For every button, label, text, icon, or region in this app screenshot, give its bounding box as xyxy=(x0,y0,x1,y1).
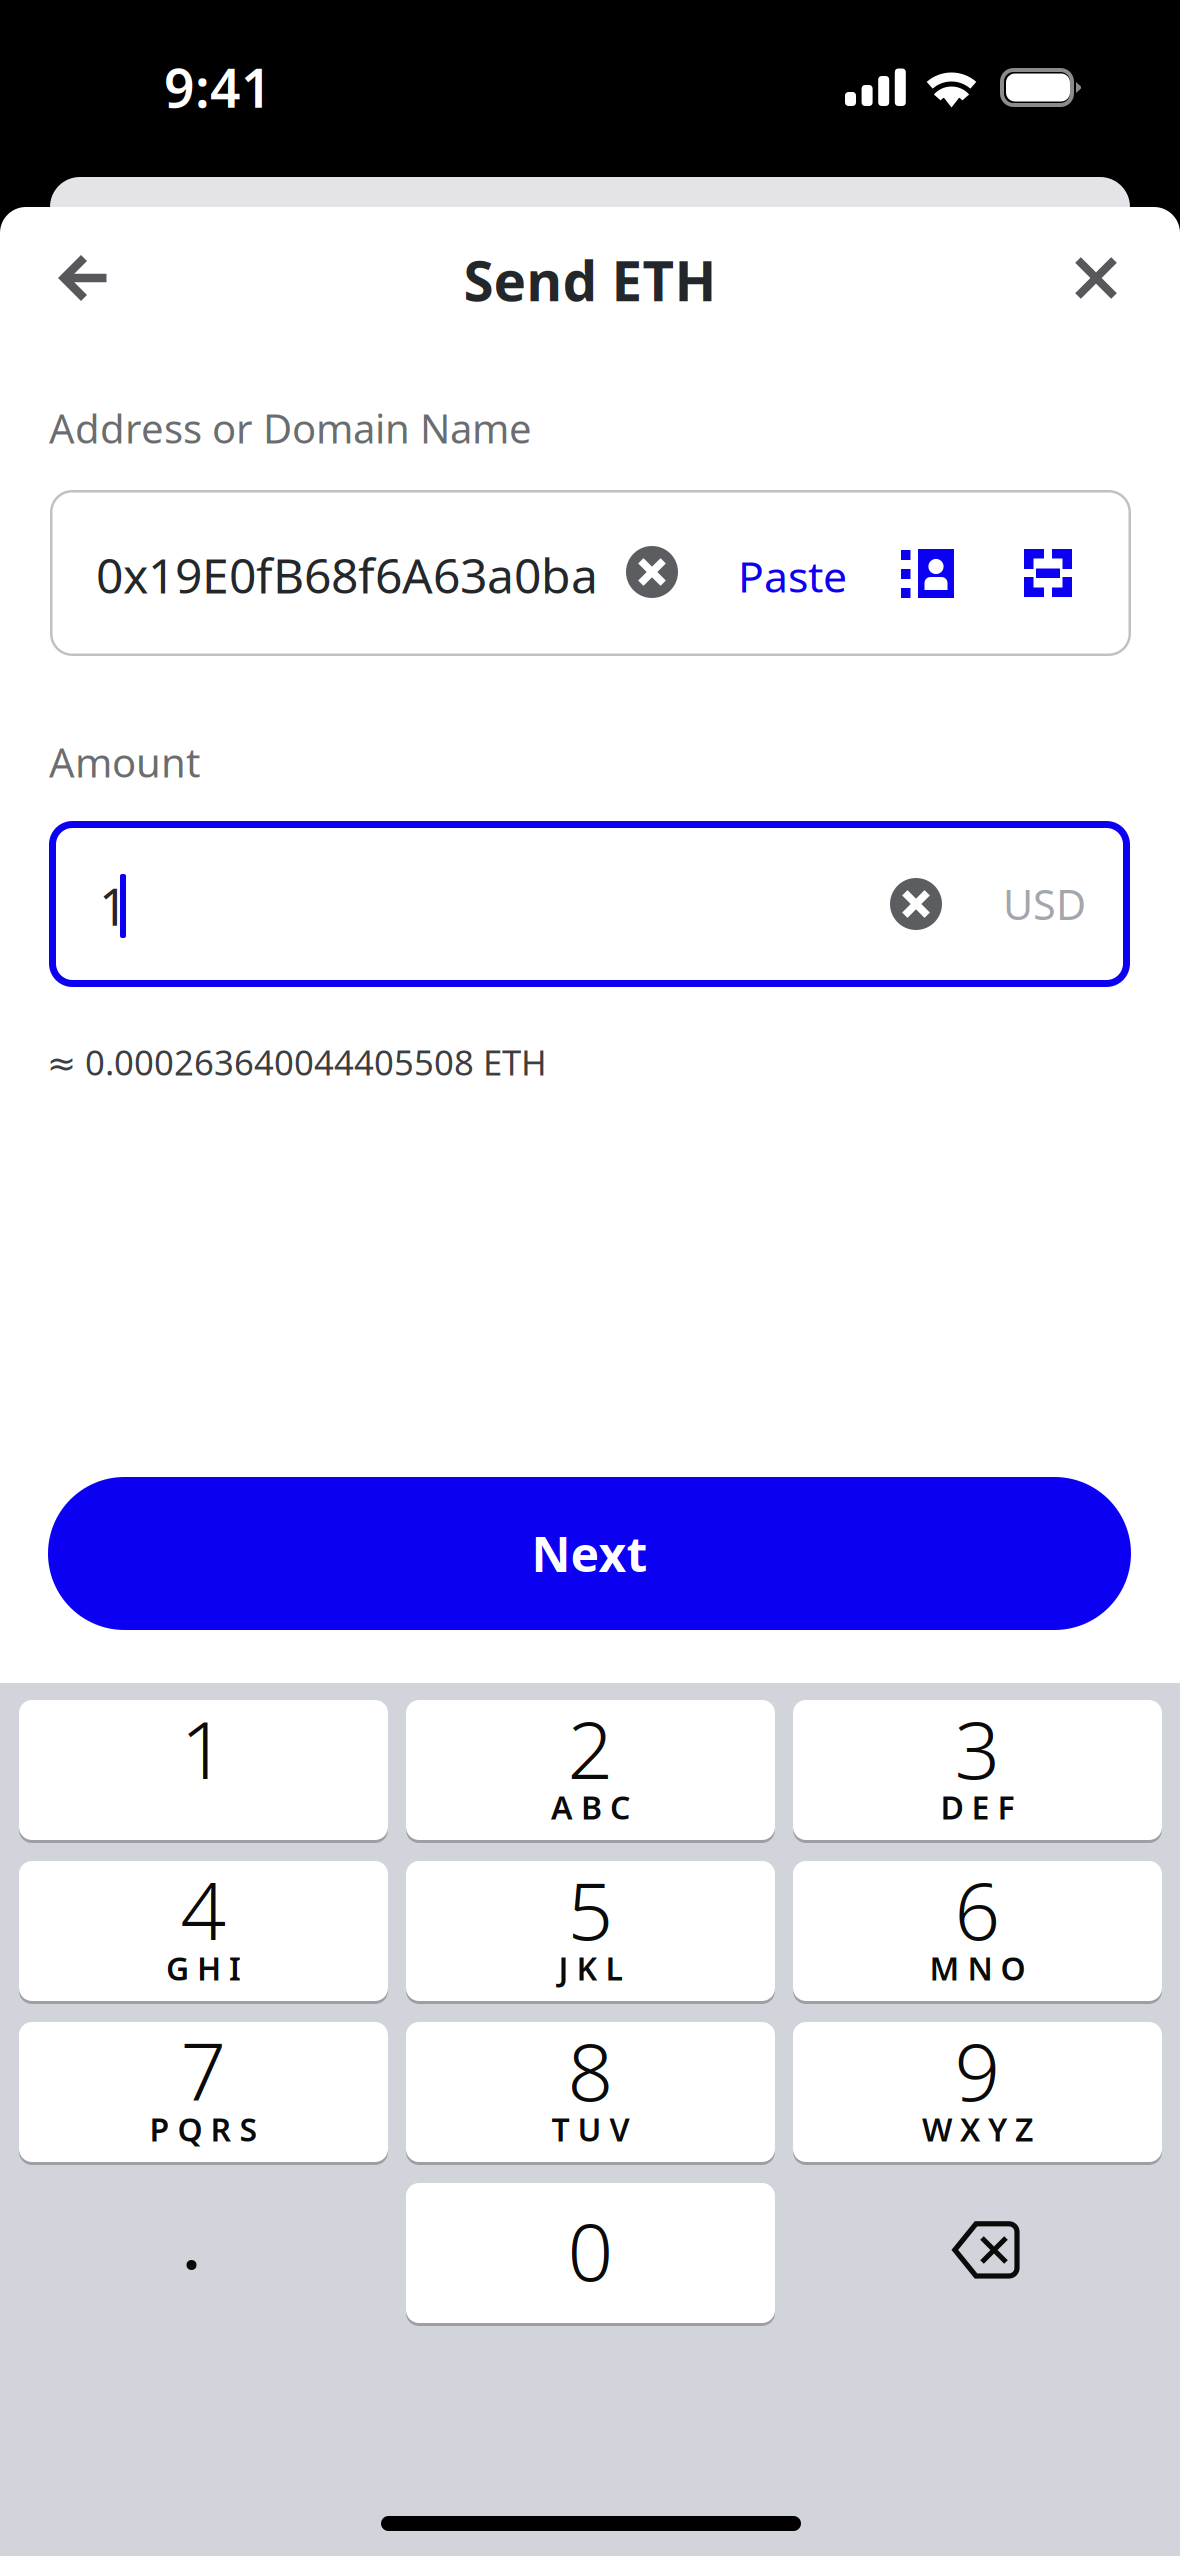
button[interactable]: 0 xyxy=(406,2183,775,2323)
staticText: 6 xyxy=(954,1856,1000,1962)
button[interactable]: 8 xyxy=(406,2022,775,2162)
staticText: ≈ 0.000263640044405508 ETH xyxy=(47,1039,547,1085)
staticText: 9 xyxy=(954,2017,1000,2123)
staticText: 5 xyxy=(567,1856,613,1962)
button[interactable]: Close xyxy=(1048,230,1144,326)
staticText: 3 xyxy=(954,1695,1000,1801)
staticText: USD xyxy=(1003,877,1086,931)
button[interactable]: Decimal point xyxy=(19,2183,388,2323)
button[interactable]: 1 xyxy=(19,1700,388,1840)
staticText: 1 xyxy=(99,872,128,940)
button[interactable]: Contacts xyxy=(901,549,954,598)
staticText: M N O xyxy=(929,1947,1025,1989)
staticText: Send ETH xyxy=(463,244,716,316)
staticText: G H I xyxy=(166,1947,241,1989)
staticText: W X Y Z xyxy=(922,2108,1033,2150)
button[interactable]: Next xyxy=(48,1477,1131,1630)
button[interactable]: Delete xyxy=(793,2183,1162,2323)
staticText: 8 xyxy=(567,2017,613,2123)
button[interactable]: Clear amount xyxy=(890,878,942,930)
staticText: Paste xyxy=(738,548,847,604)
staticText: Address or Domain Name xyxy=(49,401,532,454)
button[interactable]: Back xyxy=(36,230,132,326)
button[interactable]: Scan QR code xyxy=(1024,549,1072,597)
button[interactable]: Paste xyxy=(738,552,868,600)
button[interactable]: 7 xyxy=(19,2022,388,2162)
staticText: Next xyxy=(531,1522,647,1585)
button[interactable]: 5 xyxy=(406,1861,775,2001)
staticText: 1 xyxy=(180,1695,226,1801)
button[interactable]: Clear address xyxy=(626,546,678,598)
staticText: 2 xyxy=(567,1695,613,1801)
staticText: 0 xyxy=(567,2197,613,2303)
staticText: 7 xyxy=(180,2017,226,2123)
staticText: D E F xyxy=(940,1786,1014,1828)
button[interactable]: 4 xyxy=(19,1861,388,2001)
staticText: Amount xyxy=(49,735,200,788)
staticText: J K L xyxy=(558,1947,622,1989)
staticText: 0x19E0fB68f6A63a0ba xyxy=(96,543,598,607)
staticText: T U V xyxy=(551,2108,629,2150)
staticText: P Q R S xyxy=(149,2108,257,2150)
button[interactable]: 3 xyxy=(793,1700,1162,1840)
button[interactable]: 6 xyxy=(793,1861,1162,2001)
staticText: 9:41 xyxy=(164,52,272,122)
button[interactable]: 2 xyxy=(406,1700,775,1840)
button[interactable]: 9 xyxy=(793,2022,1162,2162)
staticText: A B C xyxy=(551,1786,630,1828)
staticText: 4 xyxy=(180,1856,226,1962)
